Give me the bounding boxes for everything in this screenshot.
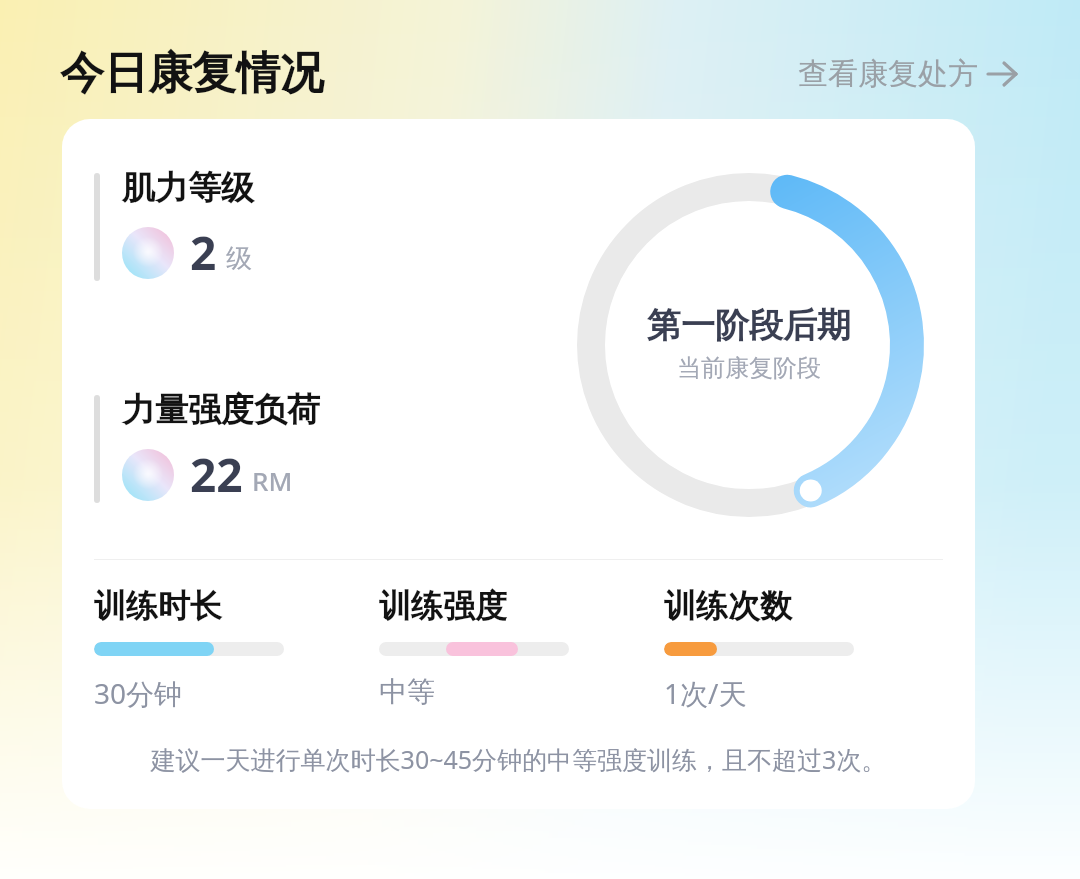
- button[interactable]: 训练次数: [664, 586, 949, 712]
- staticText: 建议一天进行单次时长30~45分钟的中等强度训练，且不超过3次。: [90, 742, 947, 776]
- button[interactable]: 第一阶段后期: [62, 119, 975, 809]
- staticText: 训练时长: [94, 586, 222, 626]
- staticText: RM: [252, 463, 293, 498]
- staticText: 30分钟: [94, 674, 183, 712]
- staticText: 22: [190, 443, 243, 506]
- staticText: 2: [190, 221, 217, 284]
- button[interactable]: 力量强度负荷: [94, 389, 320, 506]
- staticText: 力量强度负荷: [122, 389, 320, 431]
- staticText: 查看康复处方: [798, 55, 978, 93]
- staticText: 训练次数: [664, 586, 792, 626]
- button[interactable]: 训练强度: [379, 586, 664, 709]
- staticText: 第一阶段后期: [647, 304, 851, 347]
- staticText: 当前康复阶段: [677, 353, 821, 383]
- staticText: 1次/天: [664, 674, 747, 712]
- button[interactable]: 查看康复处方: [792, 49, 1026, 99]
- staticText: 肌力等级: [122, 167, 254, 209]
- staticText: 级: [226, 242, 252, 275]
- button[interactable]: 训练时长: [94, 586, 379, 712]
- button[interactable]: 肌力等级: [94, 167, 254, 284]
- staticText: 中等: [379, 674, 435, 709]
- staticText: 训练强度: [379, 586, 507, 626]
- staticText: 今日康复情况: [60, 46, 324, 101]
